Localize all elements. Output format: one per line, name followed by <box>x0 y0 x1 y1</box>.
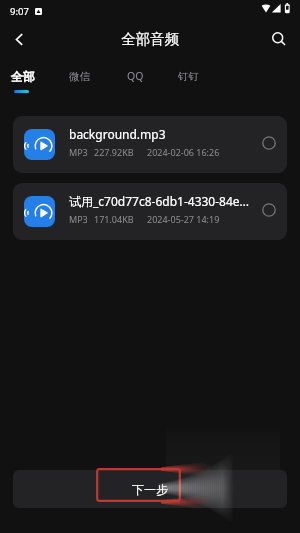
staticText: background.mp3 <box>69 126 166 142</box>
staticText: 微信 <box>69 70 90 83</box>
staticText: 171.04KB <box>94 213 134 225</box>
button[interactable]: 全部 <box>3 61 43 91</box>
staticText: MP3 <box>69 146 88 158</box>
button[interactable]: Select <box>258 132 280 154</box>
button[interactable]: 试用_c70d77c8-6db1-4330-84e4... <box>13 183 287 240</box>
button[interactable]: Back <box>3 23 35 55</box>
button[interactable]: 微信 <box>59 61 99 91</box>
staticText: 2024-02-06 16:26 <box>147 146 220 158</box>
button[interactable]: 下一步 <box>13 470 287 508</box>
button[interactable]: Select <box>258 199 280 221</box>
button[interactable]: Search <box>263 23 295 55</box>
button[interactable]: 钉钉 <box>168 61 208 91</box>
staticText: 钉钉 <box>178 70 199 83</box>
button[interactable]: QQ <box>115 61 155 91</box>
staticText: 试用_c70d77c8-6db1-4330-84e4... <box>69 193 251 209</box>
staticText: 227.92KB <box>94 146 134 158</box>
staticText: QQ <box>127 69 144 83</box>
staticText: MP3 <box>69 213 88 225</box>
staticText: 下一步 <box>132 482 168 497</box>
staticText: 全部 <box>11 69 35 84</box>
button[interactable]: background.mp3 <box>13 116 287 173</box>
staticText: 2024-05-27 14:19 <box>147 213 220 225</box>
staticText: 全部音频 <box>121 30 179 48</box>
staticText: 9:07 <box>10 5 29 18</box>
